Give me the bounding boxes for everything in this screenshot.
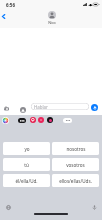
button[interactable]: yo (3, 142, 50, 155)
button[interactable]: Apple Pay (18, 118, 26, 123)
button[interactable]: Camera (2, 104, 12, 114)
staticText: nosotros (66, 146, 86, 152)
staticText: 6:56 (6, 2, 15, 8)
button[interactable]: Nico (44, 11, 59, 25)
staticText: ellos/ellas/Uds. (59, 178, 92, 184)
staticText: vosotros (66, 162, 85, 168)
button[interactable]: App Store (18, 104, 28, 114)
staticText: tú (24, 162, 29, 168)
button[interactable]: Send (91, 104, 98, 111)
staticText: Nico (48, 20, 56, 25)
staticText: él/ella/Ud. (15, 178, 38, 184)
button[interactable]: él/ella/Ud. (3, 174, 50, 187)
button[interactable]: Photos (2, 117, 9, 124)
button[interactable]: ellos/ellas/Uds. (52, 174, 99, 187)
button[interactable]: nosotros (52, 142, 99, 155)
button[interactable]: tú (3, 158, 50, 171)
staticText: Hablar (34, 104, 48, 110)
button[interactable]: Messages app (30, 117, 36, 123)
button[interactable]: Digital Touch (38, 117, 44, 123)
button[interactable]: vosotros (52, 158, 99, 171)
button[interactable]: Hablar (31, 103, 89, 110)
button[interactable]: Change keyboard (4, 203, 13, 212)
button[interactable]: Dictation (90, 203, 99, 212)
button[interactable]: Back (0, 11, 10, 21)
button[interactable]: Stickers (47, 117, 53, 123)
button[interactable]: More apps (63, 118, 72, 123)
staticText: yo (24, 146, 30, 152)
